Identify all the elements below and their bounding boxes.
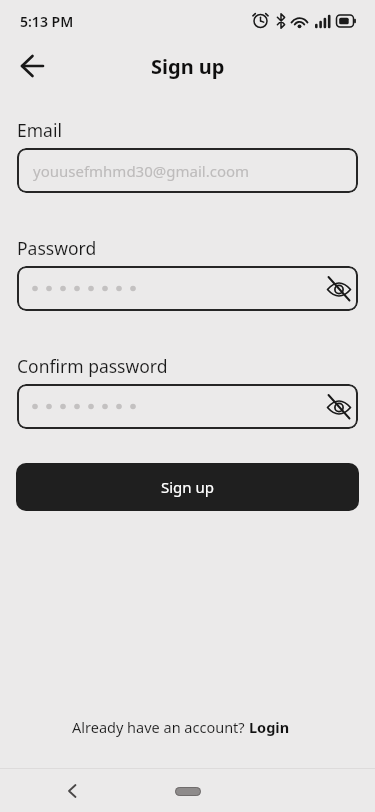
staticText: Password xyxy=(17,236,97,260)
button[interactable] xyxy=(10,44,54,88)
staticText: youusefmhmd30@gmail.coom xyxy=(33,161,250,181)
button[interactable] xyxy=(320,388,358,426)
staticText: Email xyxy=(17,118,62,142)
staticText: Sign up xyxy=(161,477,214,497)
button[interactable]: youusefmhmd30@gmail.coom xyxy=(17,148,358,193)
button[interactable] xyxy=(58,777,86,805)
button[interactable]: Sign up xyxy=(16,463,359,511)
button[interactable] xyxy=(175,787,201,796)
staticText: Already have an account? xyxy=(72,717,249,737)
button[interactable] xyxy=(17,266,358,311)
staticText: Sign up xyxy=(151,53,225,80)
button[interactable] xyxy=(320,270,358,308)
staticText: Confirm password xyxy=(17,354,168,378)
button[interactable] xyxy=(17,384,358,429)
button[interactable]: Login xyxy=(249,717,290,737)
staticText: 5:13 PM xyxy=(20,12,74,31)
